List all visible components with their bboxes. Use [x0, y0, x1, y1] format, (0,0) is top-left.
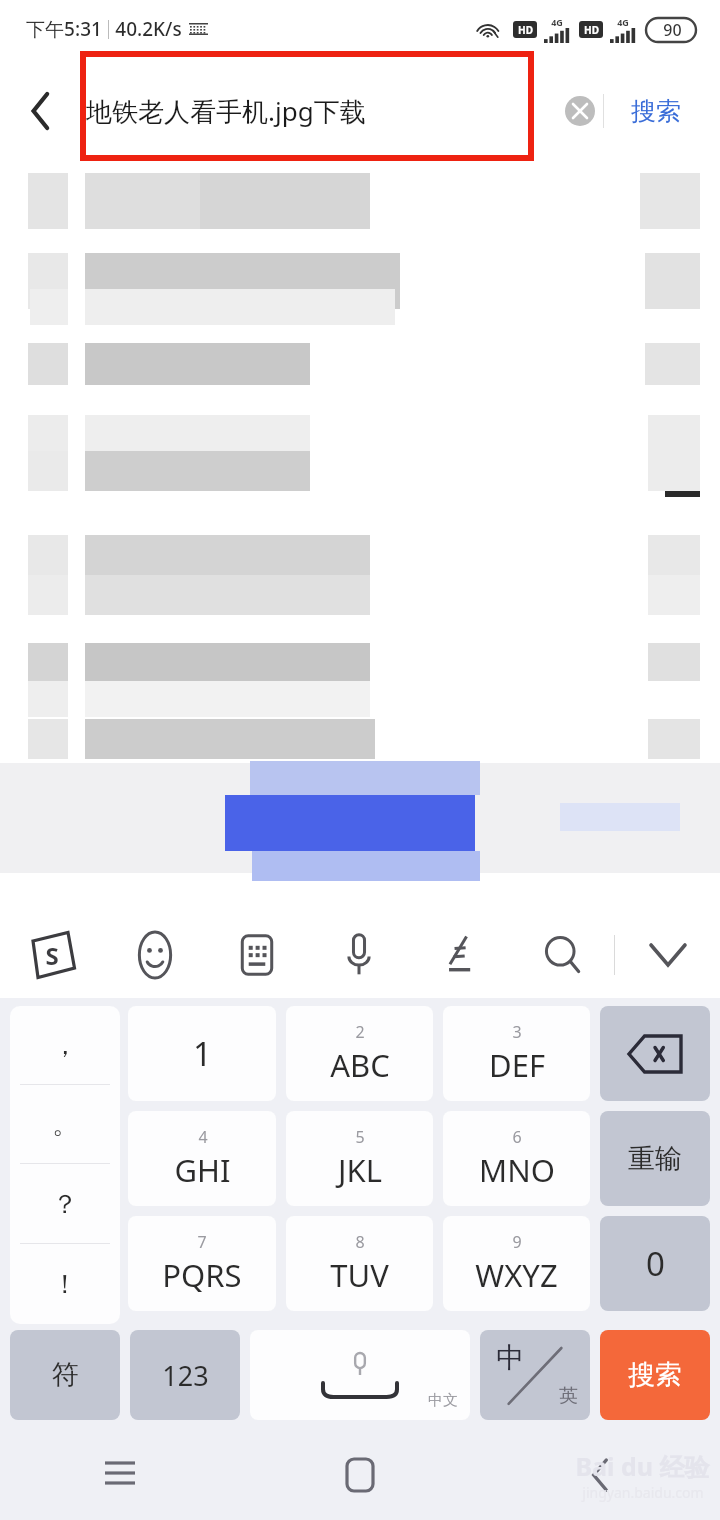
staticText: 符 — [52, 1358, 79, 1392]
staticText: 8 — [355, 1231, 365, 1253]
button[interactable]: Clear — [557, 88, 603, 134]
staticText: GHI — [174, 1149, 231, 1191]
staticText: 4G — [617, 16, 629, 28]
button[interactable]: 8 — [286, 1216, 433, 1311]
staticText: 重输 — [628, 1142, 682, 1176]
staticText: JKL — [338, 1149, 382, 1191]
button[interactable]: Back — [14, 84, 68, 138]
button[interactable]: 9 — [443, 1216, 590, 1311]
staticText: 3 — [512, 1021, 522, 1043]
staticText: 4 — [198, 1126, 208, 1148]
staticText: PQRS — [162, 1254, 242, 1296]
button[interactable]: 。 — [10, 1085, 120, 1164]
staticText: ， — [52, 1029, 78, 1062]
button[interactable]: ， — [10, 1006, 120, 1085]
staticText: 4G — [551, 16, 563, 28]
button[interactable]: 7 — [128, 1216, 276, 1311]
button[interactable]: Handwriting — [410, 912, 512, 998]
staticText: 5 — [355, 1126, 365, 1148]
staticText: 0 — [646, 1241, 665, 1286]
button[interactable]: 3 — [443, 1006, 590, 1101]
button[interactable]: 符 — [10, 1330, 120, 1420]
button[interactable]: Hide keyboard — [615, 912, 720, 998]
button[interactable]: 1 — [128, 1006, 276, 1101]
button[interactable]: 地铁老人看手机.jpg下载 — [68, 75, 708, 147]
button[interactable]: Search — [512, 912, 614, 998]
staticText: 中文 — [428, 1391, 458, 1410]
staticText: TUV — [330, 1254, 389, 1296]
button[interactable]: 6 — [443, 1111, 590, 1206]
staticText: 中 — [496, 1340, 524, 1375]
staticText: 40.2K/s — [115, 16, 182, 42]
staticText: HD — [518, 23, 533, 37]
button[interactable]: 0 — [600, 1216, 710, 1311]
button[interactable]: Emoji — [104, 912, 206, 998]
button[interactable]: Home — [240, 1430, 480, 1520]
staticText: 7 — [197, 1231, 207, 1253]
staticText: S — [45, 939, 59, 972]
staticText: 。 — [52, 1108, 78, 1141]
staticText: HD — [584, 23, 599, 37]
button[interactable]: Recents — [0, 1430, 240, 1520]
staticText: 搜索 — [628, 1358, 682, 1392]
staticText: 地铁老人看手机.jpg下载 — [86, 93, 557, 129]
staticText: DEF — [489, 1044, 545, 1086]
button[interactable]: Sogou input — [0, 912, 104, 998]
staticText: 下午5:31 — [26, 16, 102, 42]
button[interactable]: Keyboard layout — [206, 912, 308, 998]
button[interactable]: 5 — [286, 1111, 433, 1206]
staticText: 搜索 — [631, 96, 681, 127]
staticText: WXYZ — [475, 1254, 558, 1296]
button[interactable]: Space — [250, 1330, 470, 1420]
button[interactable]: 2 — [286, 1006, 433, 1101]
staticText: 123 — [162, 1357, 209, 1394]
button[interactable]: 重输 — [600, 1111, 710, 1206]
staticText: 2 — [355, 1021, 365, 1043]
button[interactable]: Back — [480, 1430, 720, 1520]
button[interactable]: ？ — [10, 1164, 120, 1244]
button[interactable]: ！ — [10, 1244, 120, 1324]
button[interactable]: 搜索 — [600, 1330, 710, 1420]
button[interactable]: Delete — [600, 1006, 710, 1101]
button[interactable]: 搜索 — [604, 75, 708, 147]
staticText: 90 — [663, 19, 682, 41]
staticText: 6 — [512, 1126, 522, 1148]
button[interactable]: Chinese English toggle — [480, 1330, 590, 1420]
button[interactable]: 4 — [128, 1111, 276, 1206]
staticText: 英 — [559, 1384, 578, 1408]
staticText: ？ — [52, 1188, 78, 1221]
staticText: ABC — [330, 1044, 390, 1086]
button[interactable]: 123 — [130, 1330, 240, 1420]
staticText: 9 — [512, 1231, 522, 1253]
staticText: jingyan.baidu.com — [582, 1483, 704, 1502]
staticText: Bai du 经验 — [575, 1449, 710, 1483]
staticText: MNO — [479, 1149, 555, 1191]
staticText: 1 — [193, 1031, 212, 1076]
button[interactable]: Voice input — [308, 912, 410, 998]
staticText: ！ — [52, 1268, 78, 1301]
